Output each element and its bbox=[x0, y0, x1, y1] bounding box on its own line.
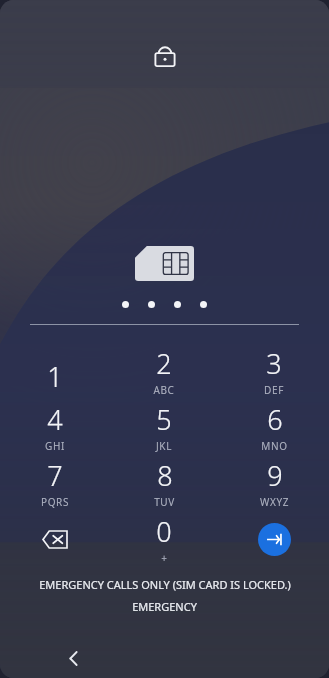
staticText: PQRS bbox=[41, 495, 69, 509]
button[interactable]: 7 bbox=[0, 455, 109, 511]
staticText: 9 bbox=[267, 457, 283, 494]
staticText: + bbox=[161, 551, 167, 565]
staticText: MNO bbox=[261, 439, 288, 453]
staticText: JKL bbox=[156, 439, 172, 453]
staticText: 8 bbox=[157, 457, 173, 494]
button[interactable]: Backspace bbox=[0, 511, 109, 567]
staticText: 0 bbox=[156, 513, 172, 550]
staticText: 4 bbox=[47, 401, 63, 438]
button[interactable]: 4 bbox=[0, 399, 109, 455]
button[interactable]: Enter bbox=[258, 523, 291, 556]
button[interactable]: 1 bbox=[0, 343, 109, 399]
staticText: 6 bbox=[267, 401, 283, 438]
staticText: 1 bbox=[47, 358, 63, 395]
other: Locked bbox=[153, 42, 177, 68]
button[interactable]: 2 bbox=[109, 343, 219, 399]
button[interactable]: 9 bbox=[219, 455, 329, 511]
staticText: GHI bbox=[45, 439, 65, 453]
staticText: DEF bbox=[264, 383, 284, 397]
button[interactable]: Back bbox=[60, 645, 86, 671]
staticText: ABC bbox=[153, 383, 175, 397]
staticText: WXYZ bbox=[260, 495, 289, 509]
button[interactable]: EMERGENCY bbox=[0, 599, 329, 614]
button[interactable]: 5 bbox=[109, 399, 219, 455]
button[interactable]: 3 bbox=[219, 343, 329, 399]
button[interactable]: 6 bbox=[219, 399, 329, 455]
button[interactable]: EMERGENCY CALLS ONLY (SIM CARD IS LOCKED… bbox=[8, 577, 321, 592]
button[interactable]: 0 bbox=[109, 511, 219, 567]
staticText: 7 bbox=[47, 457, 63, 494]
staticText: TUV bbox=[154, 495, 175, 509]
staticText: EMERGENCY CALLS ONLY (SIM CARD IS LOCKED… bbox=[39, 577, 291, 592]
staticText: EMERGENCY bbox=[132, 599, 197, 614]
staticText: 5 bbox=[156, 401, 172, 438]
button[interactable]: 8 bbox=[109, 455, 219, 511]
staticText: 2 bbox=[156, 345, 172, 382]
staticText: 3 bbox=[266, 345, 282, 382]
